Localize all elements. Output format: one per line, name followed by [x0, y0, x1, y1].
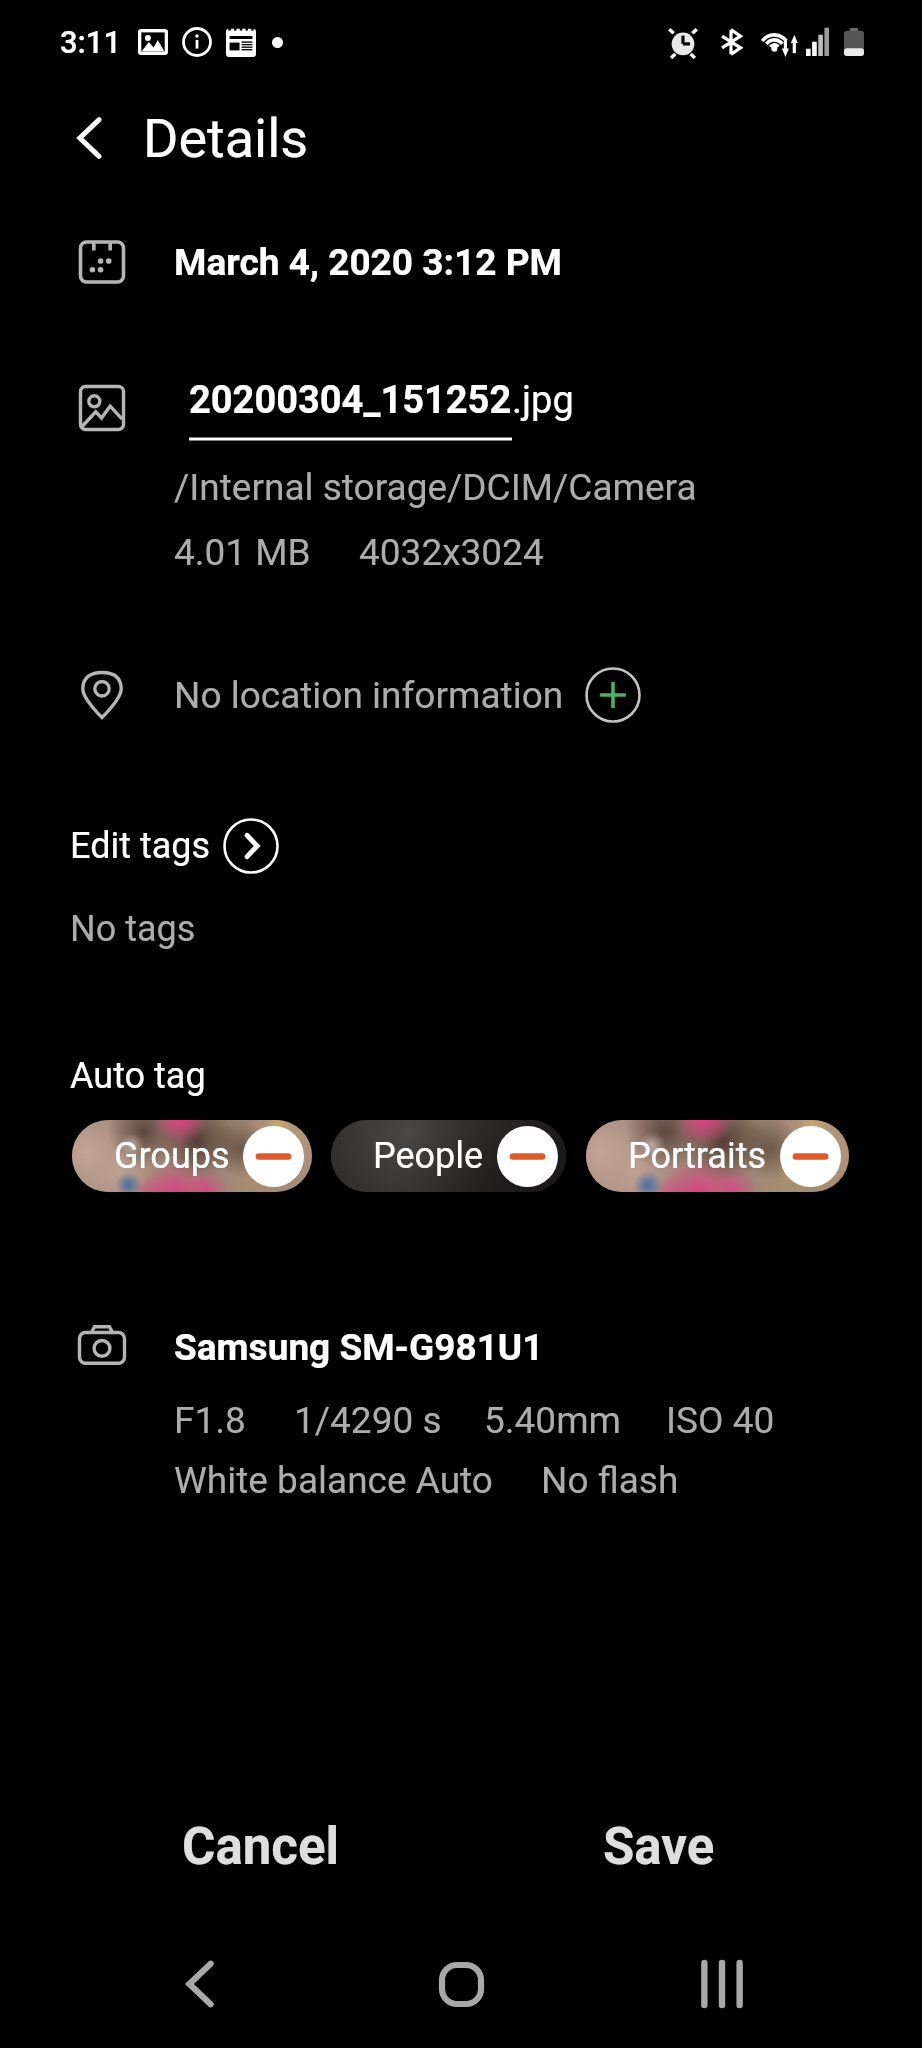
button[interactable]: Back [59, 108, 119, 168]
staticText: 4.01 MB [174, 531, 311, 574]
staticText: 5.40mm [484, 1399, 622, 1442]
button[interactable]: Groups [72, 1120, 312, 1192]
button[interactable]: Back [160, 1944, 240, 2024]
staticText: ISO 40 [666, 1399, 775, 1442]
staticText: Cancel [182, 1817, 340, 1877]
staticText: Portraits [628, 1135, 767, 1177]
staticText: 4032x3024 [359, 531, 544, 574]
staticText: .jpg [512, 378, 574, 423]
staticText: Auto tag [70, 1055, 206, 1097]
staticText: Samsung SM-G981U1 [174, 1326, 544, 1369]
staticText: White balance Auto [174, 1459, 493, 1502]
staticText: Groups [114, 1135, 230, 1177]
button[interactable]: Portraits [586, 1120, 849, 1192]
button[interactable]: Home [421, 1944, 501, 2024]
button[interactable]: Cancel [100, 1774, 422, 1920]
staticText: No location information [174, 674, 564, 717]
staticText: 20200304_151252 [189, 378, 512, 423]
staticText: 1/4290 s [294, 1399, 442, 1442]
staticText: 3:11 [60, 24, 122, 60]
staticText: Save [603, 1817, 715, 1877]
button[interactable]: Save [529, 1774, 789, 1920]
staticText: No tags [70, 908, 196, 950]
staticText: Details [143, 107, 309, 170]
staticText: /Internal storage/DCIM/Camera [174, 466, 697, 509]
staticText: March 4, 2020 3:12 PM [174, 241, 562, 284]
button[interactable]: Edit tags [70, 817, 280, 875]
staticText: Edit tags [70, 825, 211, 867]
button[interactable]: Recents [682, 1944, 762, 2024]
button[interactable]: People [331, 1120, 566, 1192]
staticText: People [373, 1135, 484, 1177]
staticText: No flash [541, 1459, 679, 1502]
staticText: F1.8 [174, 1399, 246, 1442]
button[interactable]: Add location [584, 666, 642, 724]
